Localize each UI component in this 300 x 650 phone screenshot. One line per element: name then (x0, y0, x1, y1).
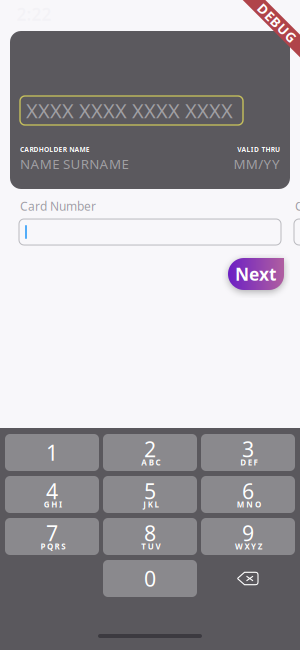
staticText: 6 (242, 477, 254, 505)
staticText: DEBUG (252, 14, 300, 32)
staticText: GHI (44, 499, 62, 510)
staticText: 3 (242, 435, 254, 463)
staticText: 2 (144, 435, 156, 463)
staticText: CARDHOLDER NAME (20, 145, 90, 154)
staticText: 4 (46, 477, 58, 505)
button[interactable]: Next (228, 258, 284, 290)
staticText: TUV (141, 541, 160, 552)
button[interactable]: 1 (5, 434, 99, 471)
staticText: NAME SURNAME (20, 155, 128, 173)
staticText: JKL (143, 499, 158, 510)
button[interactable]: 4 (5, 476, 99, 513)
staticText: 0 (144, 564, 156, 593)
button[interactable]: 5 (103, 476, 197, 513)
staticText: Next (235, 262, 277, 285)
button[interactable]: 9 (201, 518, 295, 555)
staticText: WXYZ (235, 541, 263, 552)
staticText: 8 (144, 519, 156, 547)
button[interactable]: 6 (201, 476, 295, 513)
button[interactable]: 8 (103, 518, 197, 555)
staticText: VALID THRU (237, 145, 280, 154)
staticText: ABC (141, 457, 160, 468)
staticText: Card Number (20, 198, 96, 214)
button[interactable]: 3 (201, 434, 295, 471)
button[interactable]: 0 (103, 560, 197, 597)
staticText: 7 (46, 519, 58, 547)
staticText: 5 (144, 477, 156, 505)
staticText: DEF (240, 457, 257, 468)
staticText: 9 (242, 519, 254, 547)
staticText: C (295, 198, 300, 214)
button[interactable]: 2 (103, 434, 197, 471)
staticText: XXXX XXXX XXXX XXXX (26, 97, 233, 124)
staticText: 1 (46, 438, 58, 467)
staticText: MNO (237, 499, 261, 510)
staticText: MM/YY (233, 155, 280, 173)
button[interactable]: 7 (5, 518, 99, 555)
staticText: PQRS (40, 541, 65, 552)
button[interactable]: Delete (201, 560, 295, 597)
